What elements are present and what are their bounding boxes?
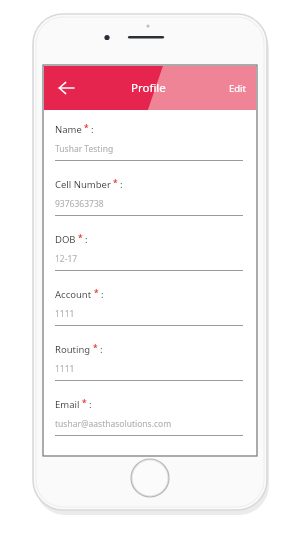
- button[interactable]: Edit: [220, 76, 256, 101]
- staticText: 1111: [55, 308, 75, 320]
- staticText: 9376363738: [55, 198, 104, 210]
- staticText: :: [120, 178, 123, 191]
- staticText: tushar@aasthasolutions.com: [55, 418, 172, 430]
- button[interactable]: Back: [52, 74, 80, 102]
- staticText: Name: [55, 123, 82, 136]
- staticText: *: [84, 122, 89, 134]
- button[interactable]: Routing: [55, 343, 243, 398]
- staticText: *: [93, 342, 98, 354]
- staticText: *: [82, 397, 87, 409]
- staticText: 1111: [55, 363, 75, 375]
- staticText: :: [101, 288, 104, 301]
- staticText: :: [85, 233, 88, 246]
- staticText: Edit: [229, 82, 247, 95]
- button[interactable]: Email: [55, 398, 243, 453]
- staticText: *: [113, 177, 118, 189]
- staticText: *: [94, 287, 99, 299]
- button[interactable]: Account: [55, 288, 243, 343]
- staticText: Email: [55, 398, 80, 411]
- button[interactable]: DOB: [55, 233, 243, 288]
- staticText: :: [89, 398, 92, 411]
- button[interactable]: Cell Number: [55, 178, 243, 233]
- staticText: :: [91, 123, 94, 136]
- staticText: :: [100, 343, 103, 356]
- staticText: Cell Number: [55, 178, 111, 191]
- staticText: Tushar Testing: [55, 143, 114, 155]
- button[interactable]: Name: [55, 123, 243, 178]
- staticText: DOB: [55, 233, 76, 246]
- staticText: Profile: [131, 80, 166, 96]
- staticText: Account: [55, 288, 92, 301]
- staticText: 12-17: [55, 253, 78, 265]
- staticText: *: [78, 232, 83, 244]
- staticText: Routing: [55, 343, 91, 356]
